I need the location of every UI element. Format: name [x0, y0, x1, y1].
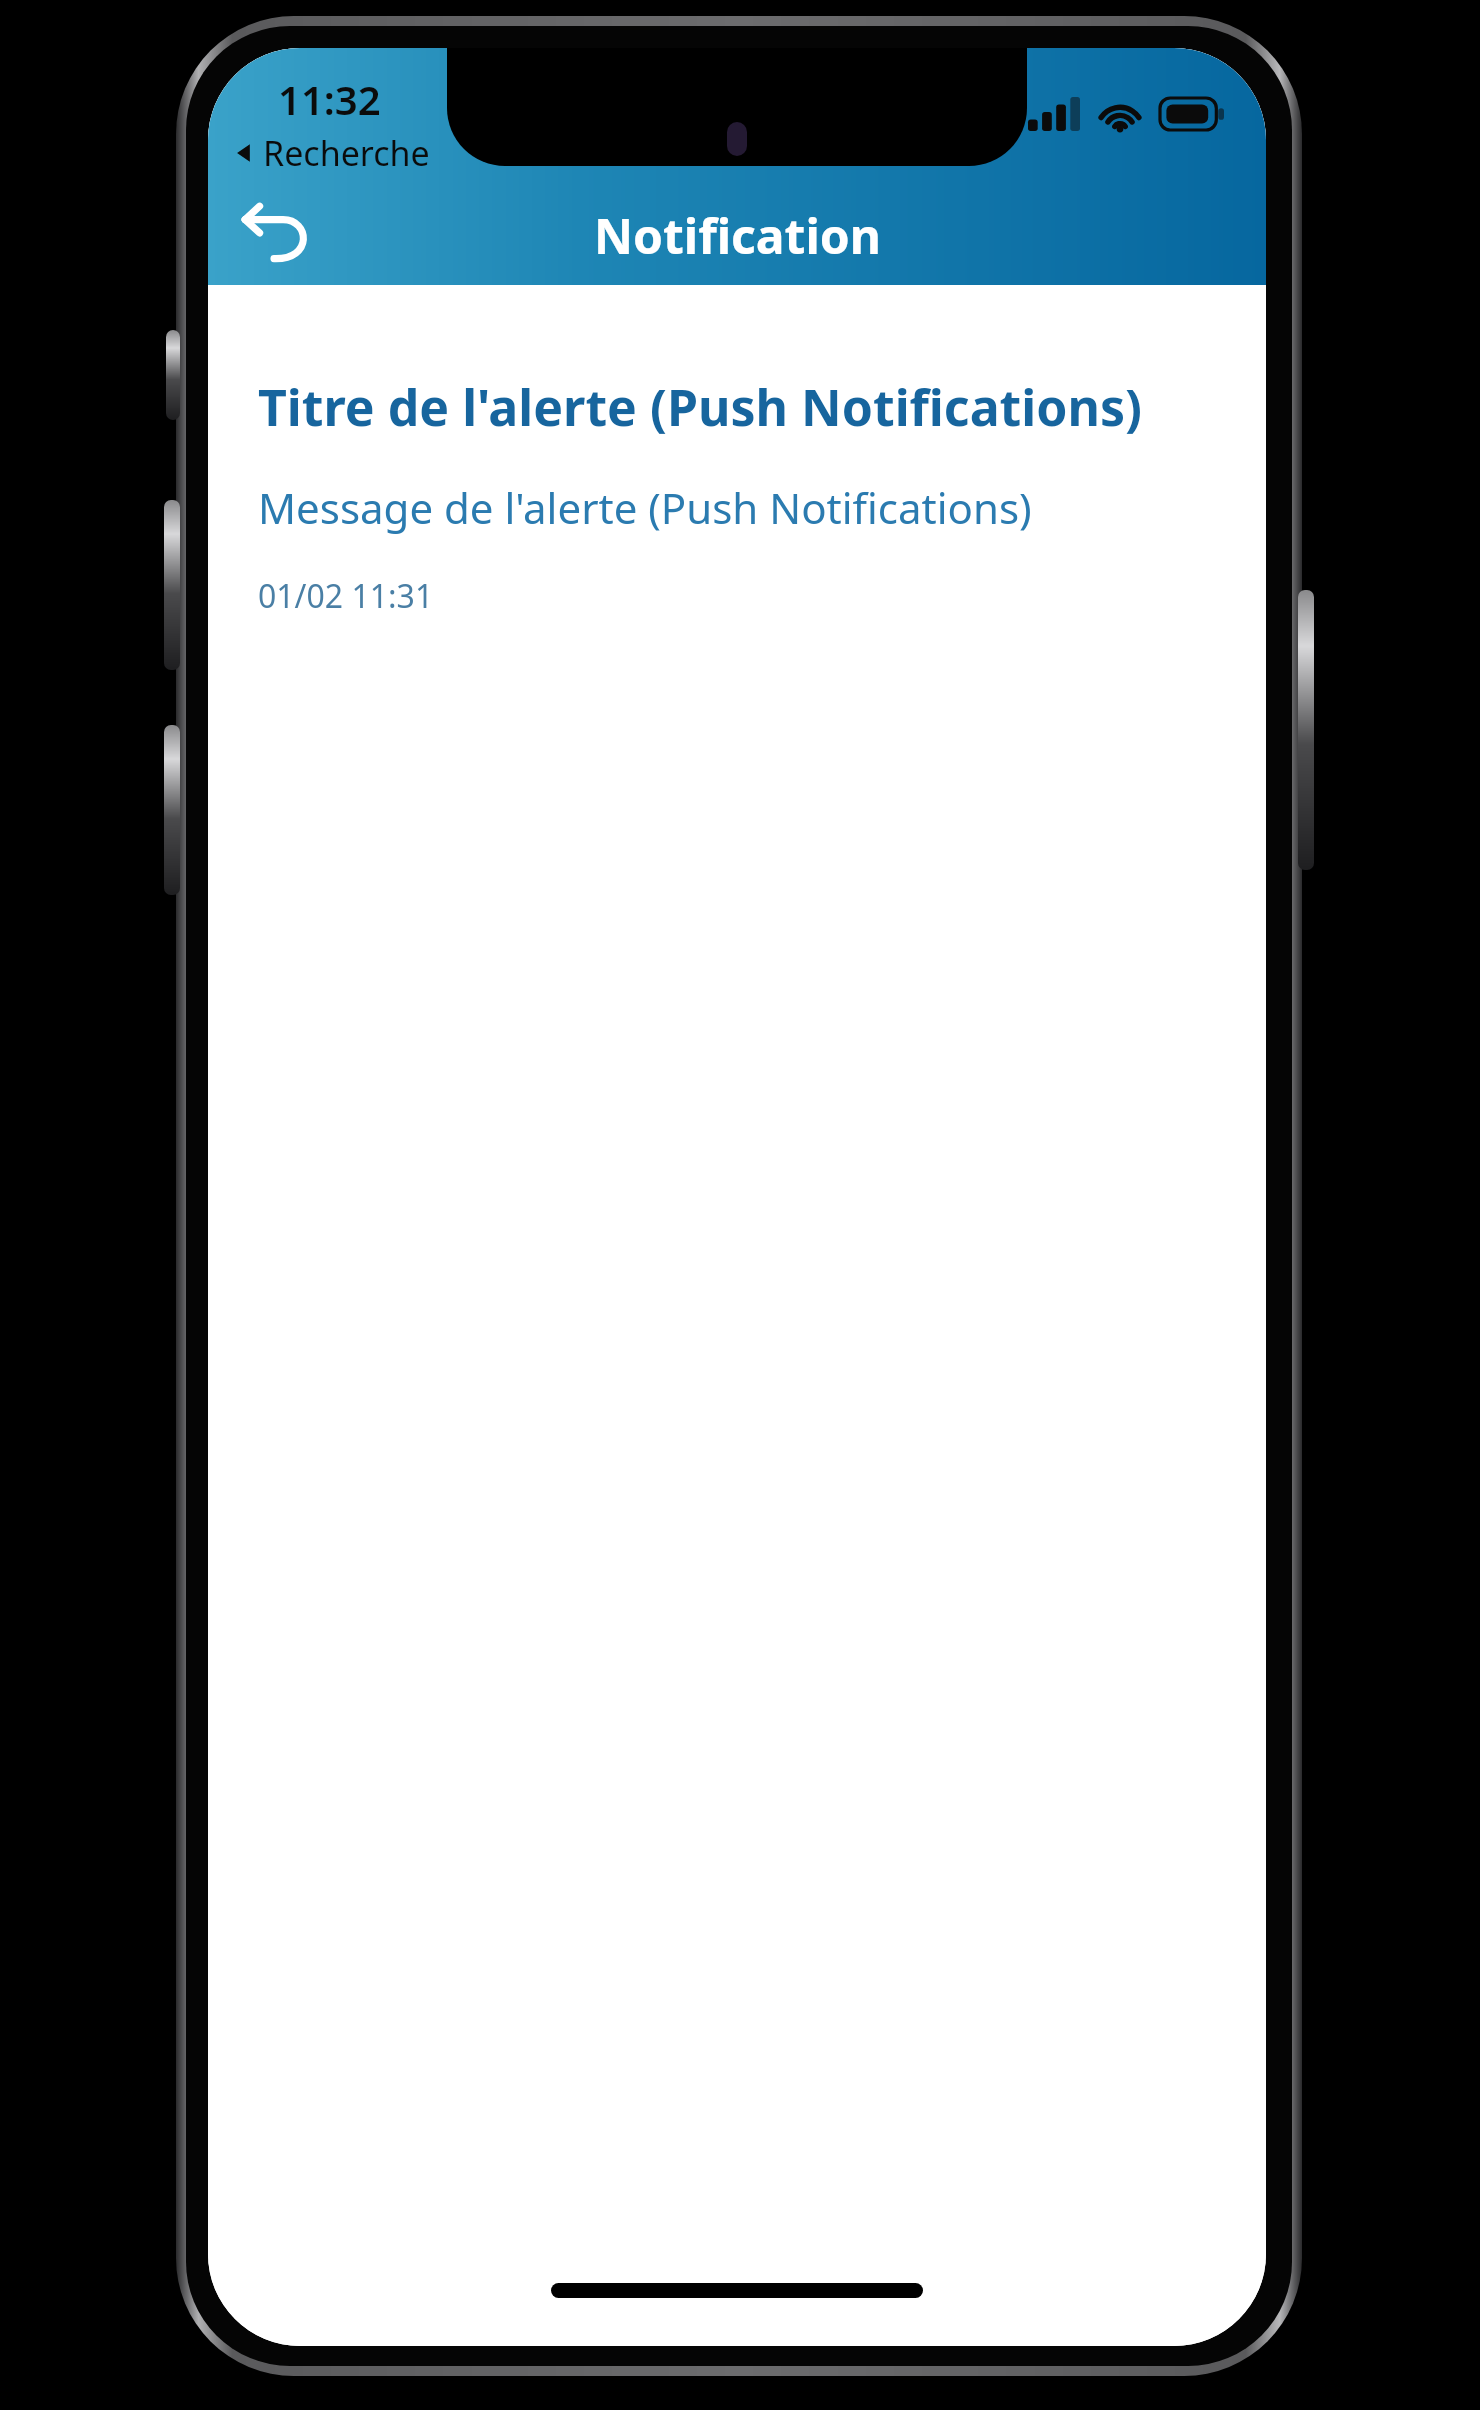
button[interactable]: Retour: [222, 188, 326, 276]
staticText: Notification: [594, 203, 881, 268]
staticText: 01/02 11:31: [258, 574, 434, 618]
staticText: Message de l'alerte (Push Notifications): [258, 479, 1032, 536]
staticText: Recherche: [263, 130, 430, 176]
staticText: Titre de l'alerte (Push Notifications): [258, 373, 1143, 441]
staticText: 11:32: [278, 72, 381, 126]
button[interactable]: Recherche: [234, 130, 430, 176]
